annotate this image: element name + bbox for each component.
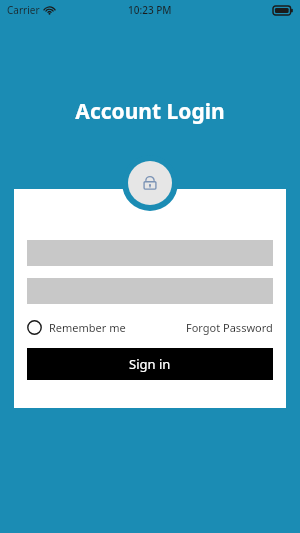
button[interactable]: Sign in [27,348,273,380]
button[interactable]: Forgot Password [186,320,273,335]
button[interactable]: Remember me [27,320,126,335]
staticText: Forgot Password [186,320,273,335]
staticText: Carrier [7,3,40,17]
staticText: Remember me [49,320,126,335]
staticText: Sign in [129,355,171,373]
other: Secure login [128,161,172,205]
staticText: 10:23 PM [128,3,172,17]
staticText: Account Login [75,97,225,126]
